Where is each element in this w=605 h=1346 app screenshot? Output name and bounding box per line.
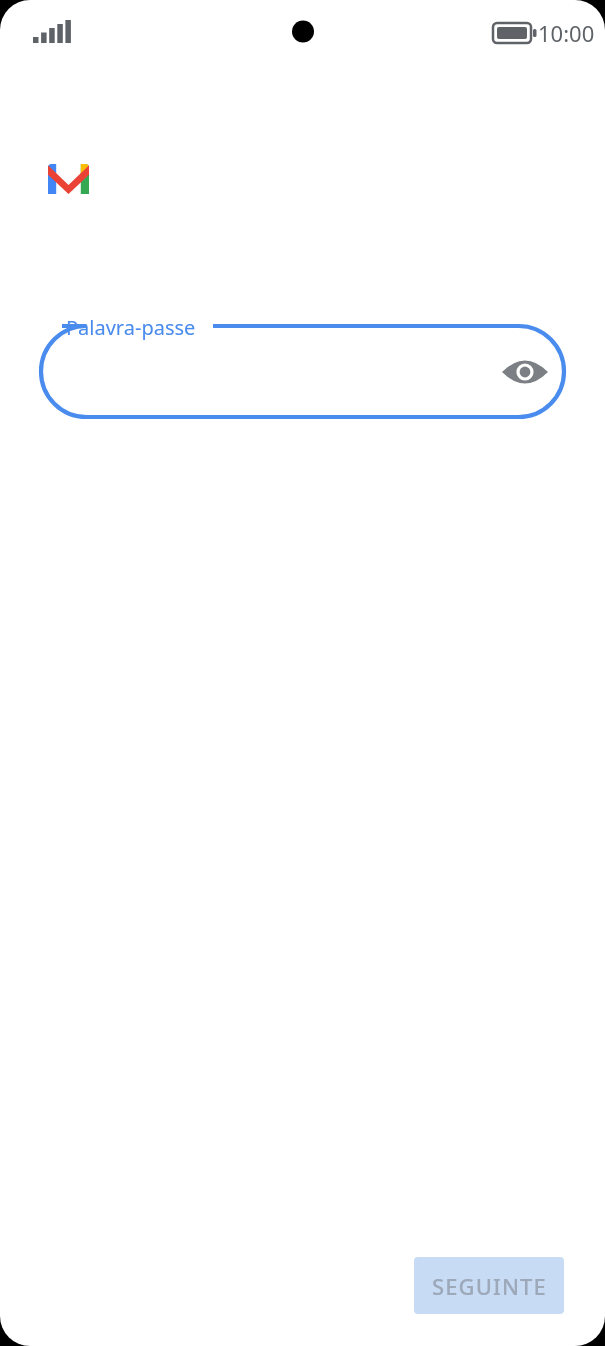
button[interactable]: Mostrar palavra-passe <box>496 343 554 401</box>
button[interactable] <box>0 0 605 1346</box>
staticText: SEGUINTE <box>432 1271 547 1301</box>
staticText: Palavra-passe <box>66 314 196 341</box>
button[interactable]: SEGUINTE <box>414 1257 564 1314</box>
staticText: 10:00 <box>538 18 595 48</box>
